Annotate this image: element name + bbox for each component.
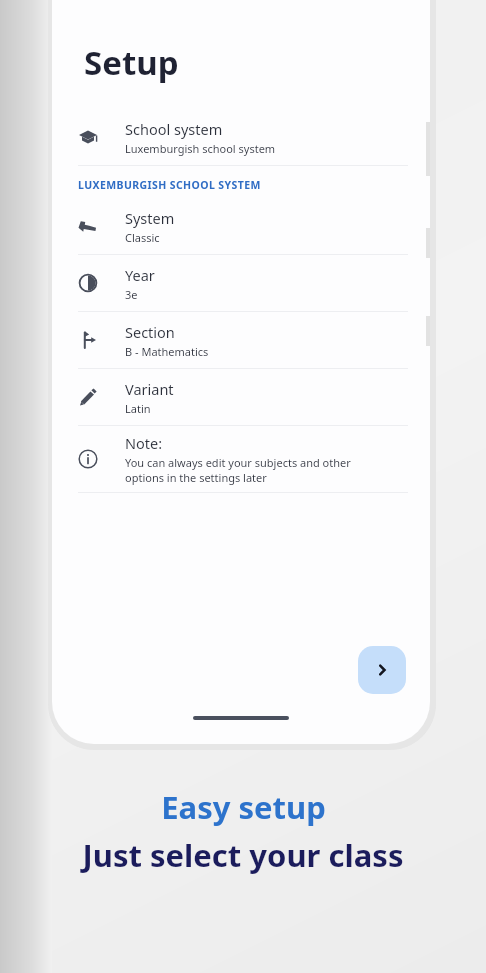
staticText: Section (125, 322, 175, 342)
staticText: Setup (84, 40, 179, 85)
button[interactable]: Variant (52, 369, 430, 425)
staticText: Note: (125, 433, 163, 453)
staticText: Year (125, 265, 155, 285)
button[interactable]: Section (52, 312, 430, 368)
button[interactable]: Note: (52, 426, 430, 492)
staticText: You can always edit your subjects and ot… (125, 455, 351, 485)
staticText: 3e (125, 287, 138, 302)
staticText: Latin (125, 401, 151, 416)
staticText: Classic (125, 230, 160, 245)
staticText: Easy setup (161, 786, 326, 828)
staticText: Just select your class (26, 834, 460, 876)
button[interactable]: Next (358, 646, 406, 694)
staticText: System (125, 208, 175, 228)
staticText: Luxemburgish school system (125, 141, 276, 156)
staticText: Variant (125, 379, 174, 399)
button[interactable]: System (52, 198, 430, 254)
button[interactable]: School system (52, 109, 430, 165)
button[interactable]: Year (52, 255, 430, 311)
staticText: B - Mathematics (125, 344, 209, 359)
staticText: LUXEMBURGISH SCHOOL SYSTEM (78, 178, 261, 192)
staticText: School system (125, 119, 223, 139)
